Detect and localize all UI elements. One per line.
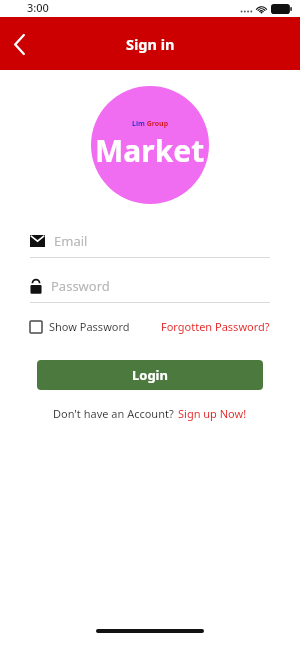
staticText: Sign up Now! (178, 406, 247, 421)
staticText: 3:00 (27, 0, 49, 15)
button[interactable]: Email (30, 230, 270, 252)
staticText: Lim Group (132, 119, 169, 129)
button[interactable]: Back (0, 24, 40, 64)
staticText: Sign in (126, 34, 175, 54)
button[interactable]: Login (37, 360, 263, 390)
staticText: Market (95, 130, 205, 171)
staticText: Forgotten Password? (161, 319, 270, 334)
button[interactable]: Sign up Now! (178, 406, 247, 421)
button[interactable]: Show Password (30, 319, 130, 334)
button[interactable]: Password (30, 275, 270, 297)
staticText: Don't have an Account? (53, 406, 174, 421)
staticText: Show Password (49, 319, 130, 334)
staticText: Login (132, 366, 168, 384)
staticText: Password (51, 277, 110, 295)
staticText: Email (54, 232, 88, 250)
button[interactable]: Forgotten Password? (161, 319, 270, 334)
